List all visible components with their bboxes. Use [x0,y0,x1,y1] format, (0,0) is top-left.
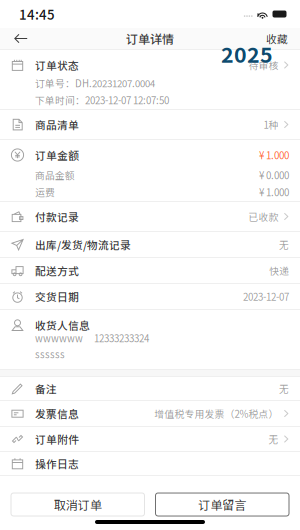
staticText: 12333233324 [94,331,149,345]
staticText: 增值税专用发票（2%税点） [154,406,278,421]
staticText: ssssss [35,347,65,361]
staticText: 备注 [35,381,57,396]
button[interactable]: Back [9,28,33,48]
button[interactable]: 收藏 [263,26,291,51]
staticText: wwwwww [35,331,83,345]
staticText: 待审核 [248,58,278,72]
staticText: 操作日志 [35,456,79,471]
button[interactable]: 订单状态 [0,50,300,109]
staticText: 出库/发货/物流记录 [35,237,131,252]
staticText: 交货日期 [35,289,79,304]
staticText: 无 [268,432,278,446]
staticText: 收藏 [266,31,288,46]
staticText: 无 [279,381,289,396]
staticText: 下单时间：2023-12-07 12:07:50 [35,93,169,107]
button[interactable]: 发票信息 [0,401,300,426]
staticText: ¥ 0.000 [259,168,289,182]
staticText: 商品金额 [35,168,75,182]
staticText: 订单金额 [35,147,79,163]
button[interactable]: 交货日期 [0,284,300,309]
button[interactable]: 商品清单 [0,110,300,139]
staticText: 已收款 [248,209,278,224]
staticText: ¥ 1.000 [259,148,289,162]
staticText: 运费 [35,185,55,199]
staticText: 订单状态 [35,57,79,73]
staticText: 14:45 [19,4,55,24]
staticText: 订单号：DH.20231207.0004 [35,76,155,90]
staticText: 订单详情 [126,30,174,47]
staticText: 发票信息 [35,406,79,421]
staticText: 订单留言 [198,496,246,513]
button[interactable]: 订单附件 [0,427,300,451]
staticText: 无 [279,237,289,252]
staticText: 取消订单 [54,496,102,513]
button[interactable]: 备注 [0,377,300,400]
button[interactable]: 收货人信息 [0,310,300,369]
button[interactable]: 取消订单 [11,493,144,516]
staticText: 付款记录 [35,209,79,224]
button[interactable]: 订单金额 [0,140,300,201]
staticText: 快递 [269,263,289,278]
staticText: 订单附件 [35,431,79,447]
button[interactable]: 配送方式 [0,258,300,283]
button[interactable]: 付款记录 [0,202,300,231]
button[interactable]: 操作日志 [0,452,300,475]
staticText: ¥ 1.000 [259,185,289,199]
staticText: 商品清单 [35,117,79,132]
button[interactable]: 出库/发货/物流记录 [0,232,300,257]
button[interactable]: 订单留言 [155,493,289,516]
staticText: 配送方式 [35,263,79,278]
staticText: 1种 [263,117,278,132]
staticText: 收货人信息 [35,317,90,333]
staticText: 2023-12-07 [243,289,289,304]
staticText: 2025 [221,38,273,69]
